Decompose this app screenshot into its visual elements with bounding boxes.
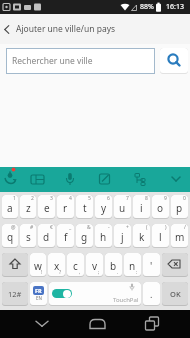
button[interactable]: Rechercher une ville [7,49,154,73]
staticText: _ [69,224,72,231]
button[interactable] [160,48,188,74]
button[interactable]: j [114,224,131,248]
button[interactable]: q [2,224,18,248]
button[interactable]: p [171,195,188,219]
button[interactable] [162,253,188,277]
button[interactable] [64,310,127,338]
staticText: + [126,224,129,231]
staticText: h [100,230,107,244]
staticText: 5 [88,195,91,202]
staticText: 8 [145,195,148,202]
button[interactable]: TouchPal [49,282,141,306]
staticText: 16:13 [166,2,184,12]
staticText: g [81,230,88,244]
staticText: FR [35,287,42,294]
staticText: , [79,269,81,276]
staticText: c [73,259,78,273]
button[interactable]: r [57,195,74,219]
staticText: & [87,224,91,231]
staticText: z [26,201,31,215]
button[interactable]: k [133,224,150,248]
button[interactable]: o [152,195,169,219]
staticText: x [54,259,60,273]
button[interactable] [0,310,64,338]
button[interactable]: c [67,253,84,277]
staticText: t [83,201,87,215]
button[interactable]: OK [162,282,188,306]
staticText: p [176,201,183,215]
staticText: - [108,224,110,231]
staticText: r [63,201,68,215]
staticText: € [50,224,53,231]
staticText: : [136,269,138,276]
staticText: @ [11,224,16,231]
button[interactable] [2,253,28,277]
staticText: d [43,230,50,244]
staticText: o [157,201,164,215]
staticText: n [129,259,136,273]
staticText: 1 [13,195,16,202]
staticText: . [117,269,119,276]
staticText: b [110,259,117,273]
button[interactable]: Ajouter une ville/un pays [0,14,190,44]
staticText: ' [150,259,153,273]
staticText: EN [36,295,42,301]
staticText: 12# [8,289,22,299]
button[interactable]: h [95,224,112,248]
button[interactable]: n [124,253,141,277]
staticText: v [92,259,98,273]
staticText: 4 [69,195,72,202]
button[interactable]: . [143,282,160,306]
staticText: 0 [183,195,186,202]
staticText: 2 [31,195,34,202]
button[interactable]: v [86,253,103,277]
button[interactable]: m [171,224,188,248]
staticText: a [7,201,13,215]
button[interactable]: 12# [2,282,28,306]
button[interactable]: g [76,224,93,248]
staticText: s [26,230,31,244]
staticText: Rechercher une ville [12,55,93,67]
button[interactable]: e [38,195,55,219]
staticText: 88% [140,2,154,12]
staticText: l [159,230,162,244]
staticText: u [119,201,126,215]
staticText: 7 [126,195,129,202]
button[interactable]: a [2,195,18,219]
staticText: i [140,201,143,215]
button[interactable]: w [30,253,46,277]
staticText: f [64,230,68,244]
button[interactable]: z [20,195,36,219]
button[interactable]: FR [30,282,47,306]
staticText: Ajouter une ville/un pays [16,23,116,35]
button[interactable]: i [133,195,150,219]
staticText: 3 [50,195,53,202]
staticText: TouchPal [113,296,139,304]
staticText: / [184,224,186,231]
staticText: q [7,230,14,244]
staticText: ! [41,269,43,276]
staticText: w [34,259,42,273]
staticText: y [101,201,107,215]
button[interactable]: u [114,195,131,219]
staticText: e [44,201,50,215]
button[interactable]: t [76,195,93,219]
staticText: k [139,230,145,244]
button[interactable]: s [20,224,36,248]
button[interactable]: f [57,224,74,248]
button[interactable]: y [95,195,112,219]
button[interactable]: l [152,224,169,248]
button[interactable] [127,310,190,338]
button[interactable]: ' [143,253,160,277]
button[interactable]: d [38,224,55,248]
staticText: OK [170,289,181,299]
button[interactable]: x [48,253,65,277]
staticText: . [150,288,153,300]
staticText: m [175,230,185,244]
button[interactable] [0,167,190,192]
staticText: # [30,224,34,231]
staticText: 6 [107,195,110,202]
button[interactable]: b [105,253,122,277]
staticText: ; [98,269,100,276]
staticText: j [121,230,124,244]
